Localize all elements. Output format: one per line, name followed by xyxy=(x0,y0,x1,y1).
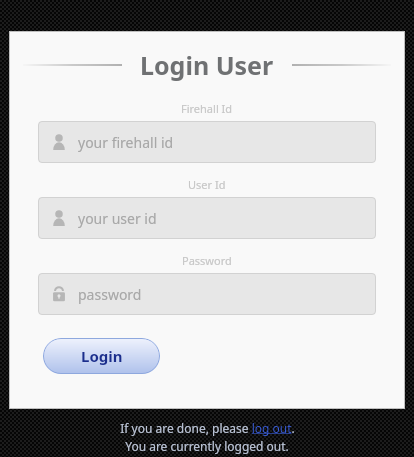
staticText: Login xyxy=(81,346,123,366)
button[interactable]: Login xyxy=(43,338,160,374)
button[interactable]: your user id xyxy=(38,197,376,239)
staticText: Firehall Id xyxy=(181,101,233,116)
staticText: your firehall id xyxy=(78,133,174,152)
staticText: User Id xyxy=(188,177,226,192)
staticText: your user id xyxy=(78,209,157,228)
staticText: You are currently logged out. xyxy=(125,438,289,454)
staticText: Login User xyxy=(140,48,274,82)
button[interactable]: your firehall id xyxy=(38,121,376,163)
button[interactable]: If you are done, please log out. xyxy=(120,420,295,436)
button[interactable]: password xyxy=(38,273,376,315)
staticText: password xyxy=(78,285,142,304)
staticText: Password xyxy=(182,253,232,268)
